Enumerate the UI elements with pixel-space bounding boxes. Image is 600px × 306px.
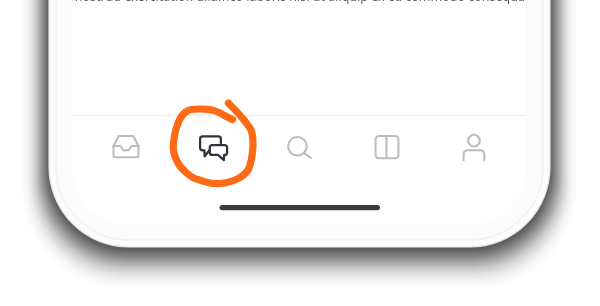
button[interactable]: Library (356, 121, 418, 173)
button[interactable]: Profile (443, 121, 505, 173)
button[interactable]: Inbox (95, 121, 157, 173)
button[interactable]: Messages (182, 121, 244, 173)
button[interactable]: Search (267, 121, 329, 173)
